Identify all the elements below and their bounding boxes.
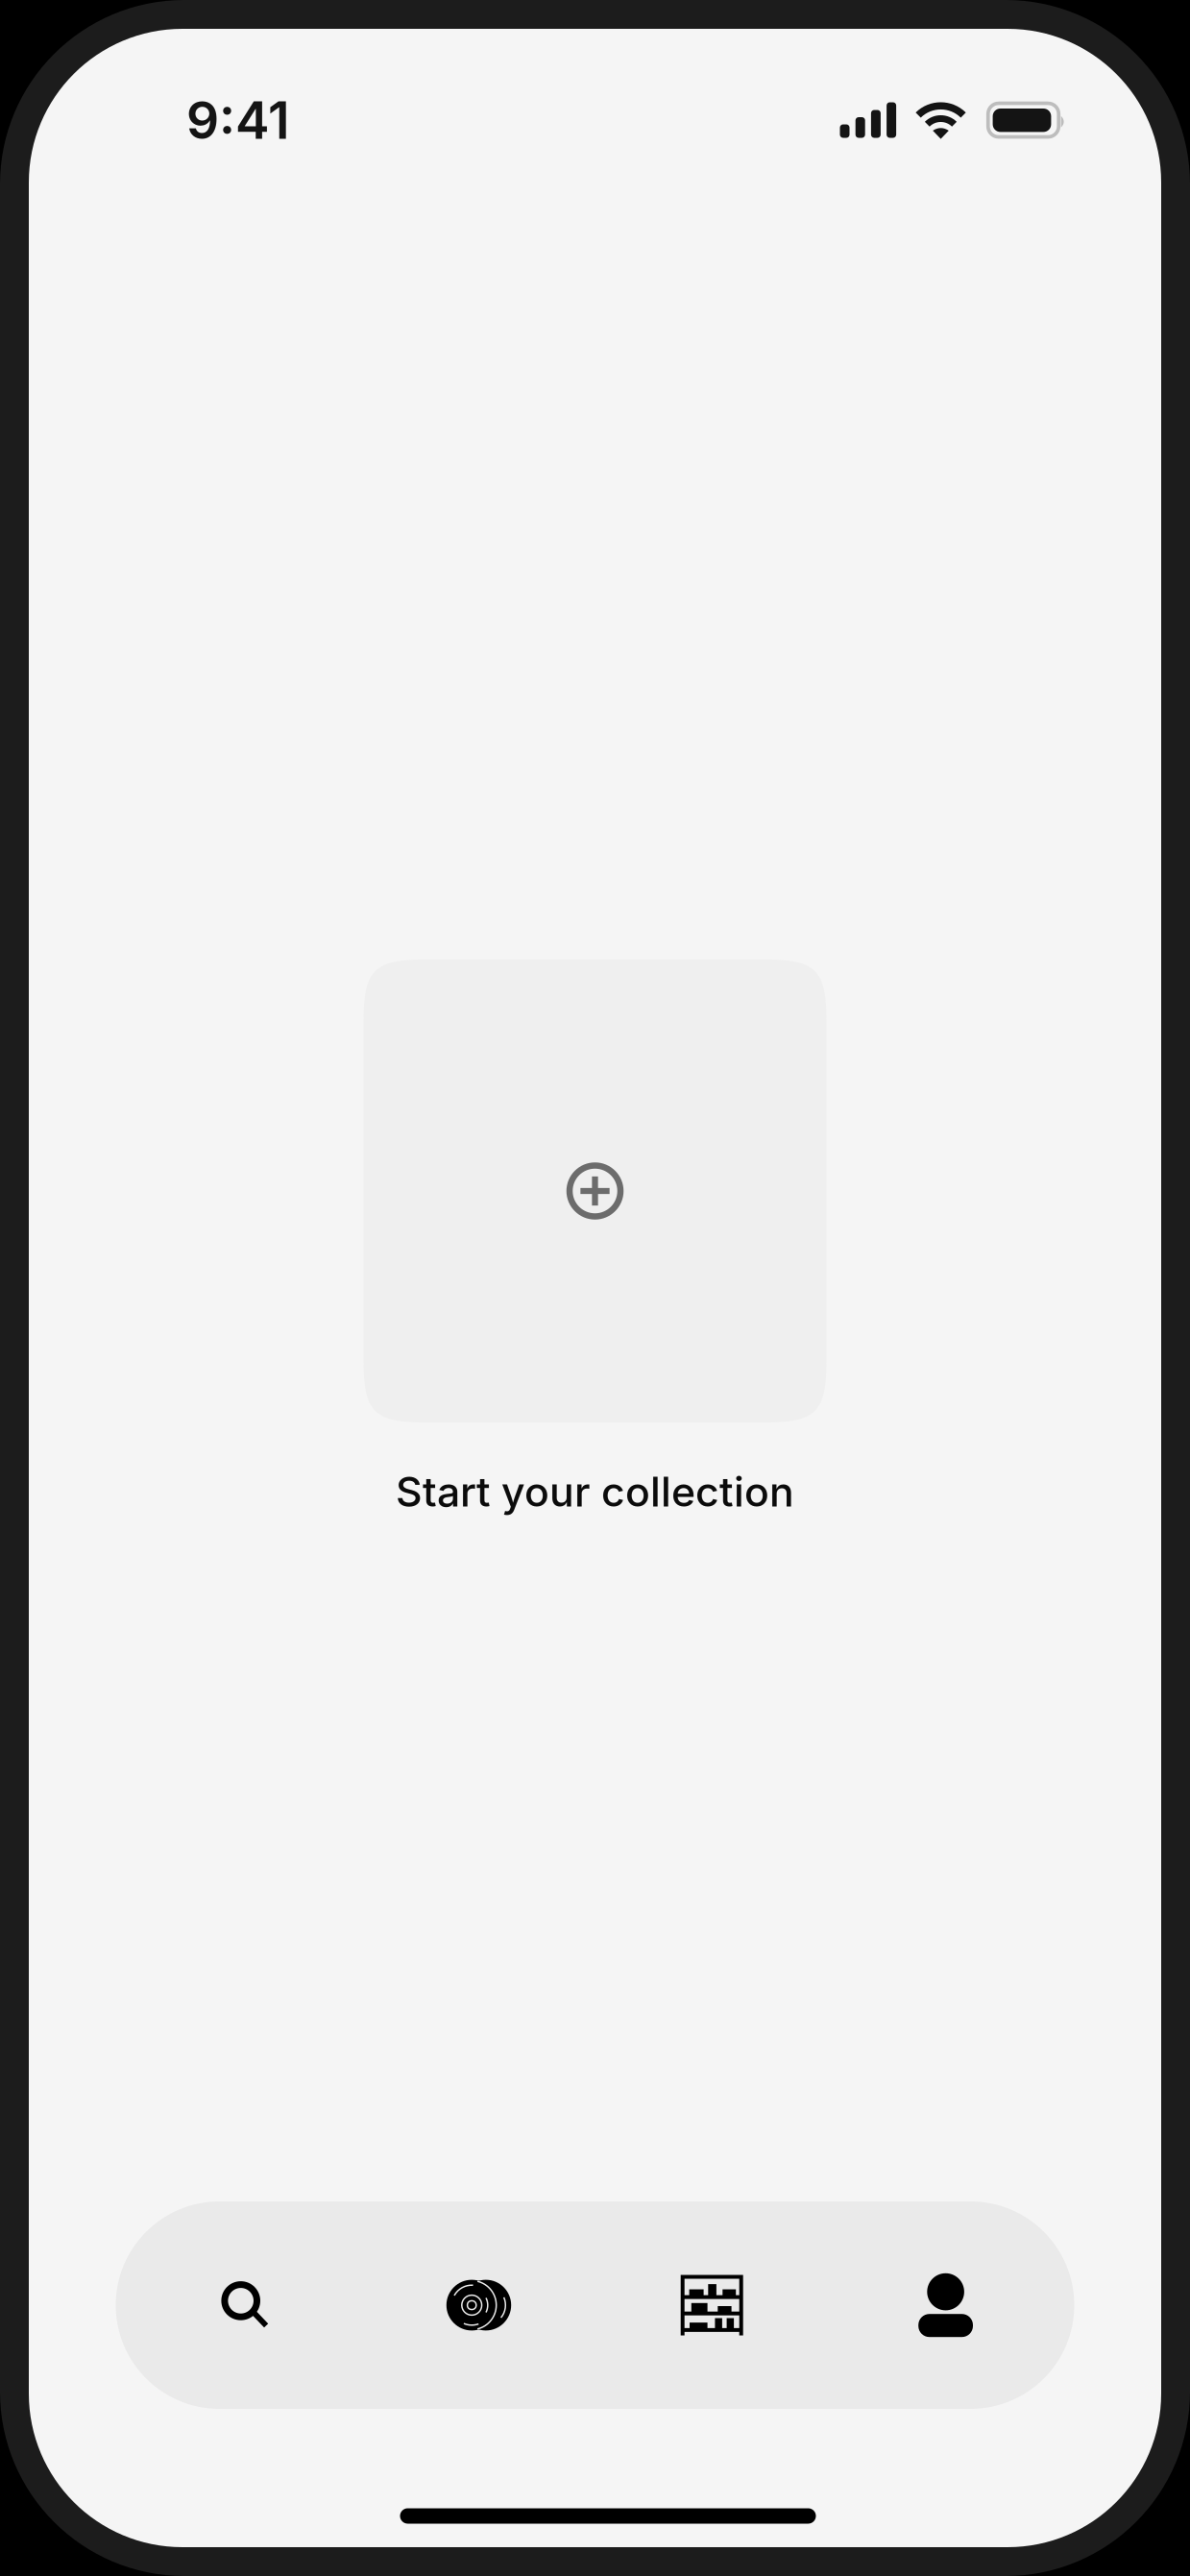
staticText: Start your collection [396,1467,794,1516]
button[interactable]: Add to your collection [364,960,826,1422]
button[interactable]: Releases [362,2201,595,2409]
button[interactable]: Collection [595,2201,829,2409]
button[interactable]: Profile [829,2201,1062,2409]
staticText: 9:41 [186,89,290,151]
button[interactable]: Search [128,2201,362,2409]
